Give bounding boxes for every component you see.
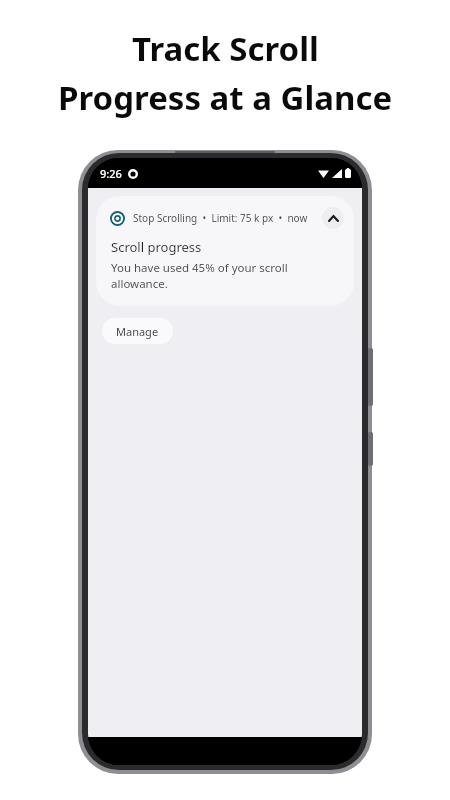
staticText: Manage <box>116 324 159 339</box>
staticText: Progress at a Glance <box>58 75 393 120</box>
staticText: Scroll progress <box>111 238 202 256</box>
staticText: You have used 45% of your scroll allowan… <box>111 260 344 292</box>
staticText: 9:26 <box>100 166 122 181</box>
button[interactable]: Manage <box>102 318 173 344</box>
button[interactable]: Stop Scrolling • Limit: 75 k px • now <box>96 196 354 306</box>
staticText: Stop Scrolling • Limit: 75 k px • now <box>133 211 308 225</box>
button[interactable]: Collapse notification <box>322 207 344 229</box>
staticText: Track Scroll <box>132 26 319 71</box>
